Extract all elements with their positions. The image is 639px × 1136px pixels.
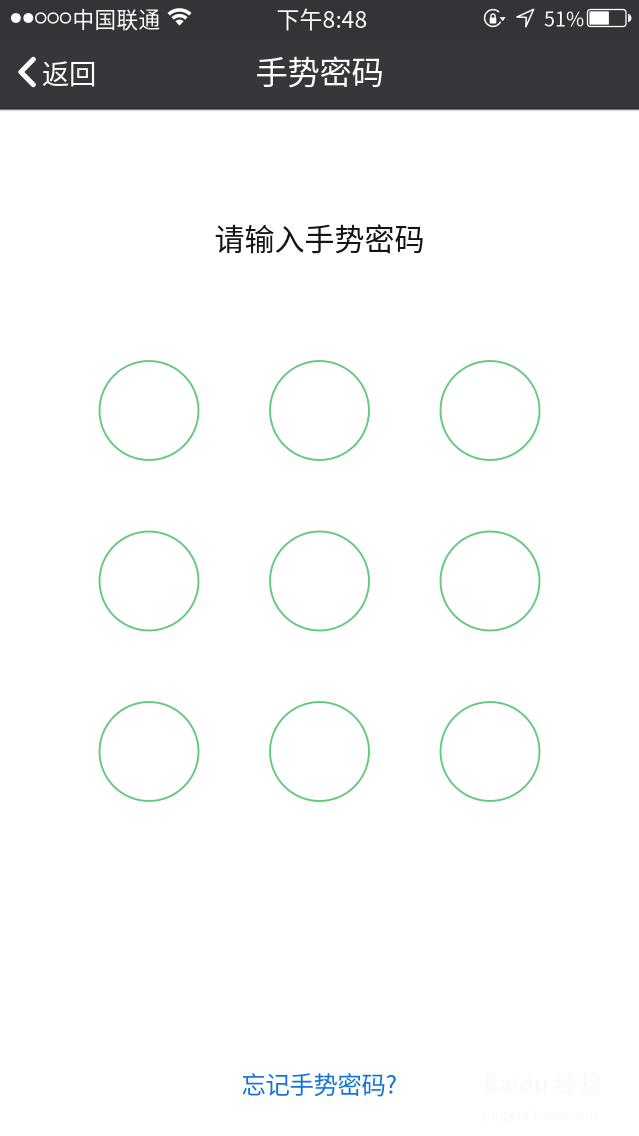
button[interactable]: Pattern dot 2 <box>270 361 369 460</box>
button[interactable]: Pattern dot 9 <box>440 702 539 801</box>
button[interactable]: Pattern dot 8 <box>270 702 369 801</box>
button[interactable]: Pattern dot 6 <box>440 531 539 630</box>
staticText: 中国联通 <box>72 2 160 34</box>
button[interactable]: Pattern dot 1 <box>99 361 198 460</box>
button[interactable]: Pattern dot 5 <box>270 531 369 630</box>
button[interactable]: Pattern dot 7 <box>99 702 198 801</box>
button[interactable]: Pattern dot 4 <box>99 531 198 630</box>
button[interactable]: 返回 <box>0 37 110 106</box>
button[interactable]: Pattern dot 3 <box>440 361 539 460</box>
staticText: 51% <box>544 4 584 32</box>
staticText: 手势密码 <box>255 47 383 93</box>
button[interactable]: 忘记手势密码? <box>225 1055 413 1111</box>
staticText: 返回 <box>42 52 96 92</box>
staticText: 忘记手势密码? <box>241 1065 397 1101</box>
staticText: 下午8:48 <box>276 1 367 35</box>
staticText: 请输入手势密码 <box>214 215 424 259</box>
